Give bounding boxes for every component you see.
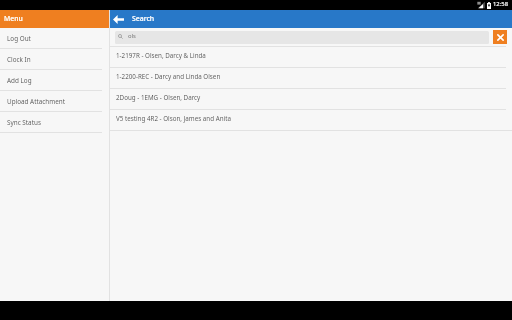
staticText: Upload Attachment — [7, 97, 66, 106]
button[interactable]: Clock In — [0, 49, 109, 70]
staticText: 12:58 — [493, 0, 509, 8]
staticText: Add Log — [7, 76, 32, 85]
staticText: 1-2197R - Olsen, Darcy & Linda — [116, 51, 206, 60]
staticText: Log Out — [7, 34, 31, 43]
staticText: Search — [132, 14, 155, 23]
button[interactable]: 1-2197R - Olsen, Darcy & Linda — [110, 46, 512, 67]
staticText: 2Doug - 1EMG - Olsen, Darcy — [116, 93, 201, 102]
button[interactable]: ols — [115, 31, 489, 44]
button[interactable]: Upload Attachment — [0, 91, 109, 112]
button[interactable]: Sync Status — [0, 112, 109, 133]
button[interactable]: Log Out — [0, 28, 109, 49]
button[interactable]: V5 testing 4R2 - Olson, James and Anita — [110, 109, 512, 130]
button[interactable]: 1-2200-REC - Darcy and Linda Olsen — [110, 67, 512, 88]
button[interactable]: 2Doug - 1EMG - Olsen, Darcy — [110, 88, 512, 109]
staticText: V5 testing 4R2 - Olson, James and Anita — [116, 114, 231, 123]
staticText: Sync Status — [7, 118, 41, 127]
button[interactable]: Clear search — [493, 30, 507, 44]
staticText: Clock In — [7, 55, 31, 64]
staticText: 1-2200-REC - Darcy and Linda Olsen — [116, 72, 221, 81]
staticText: Menu — [4, 14, 23, 23]
button[interactable]: Add Log — [0, 70, 109, 91]
staticText: ols — [128, 32, 136, 40]
button[interactable]: Menu — [0, 10, 109, 28]
button[interactable]: Back — [110, 11, 127, 28]
